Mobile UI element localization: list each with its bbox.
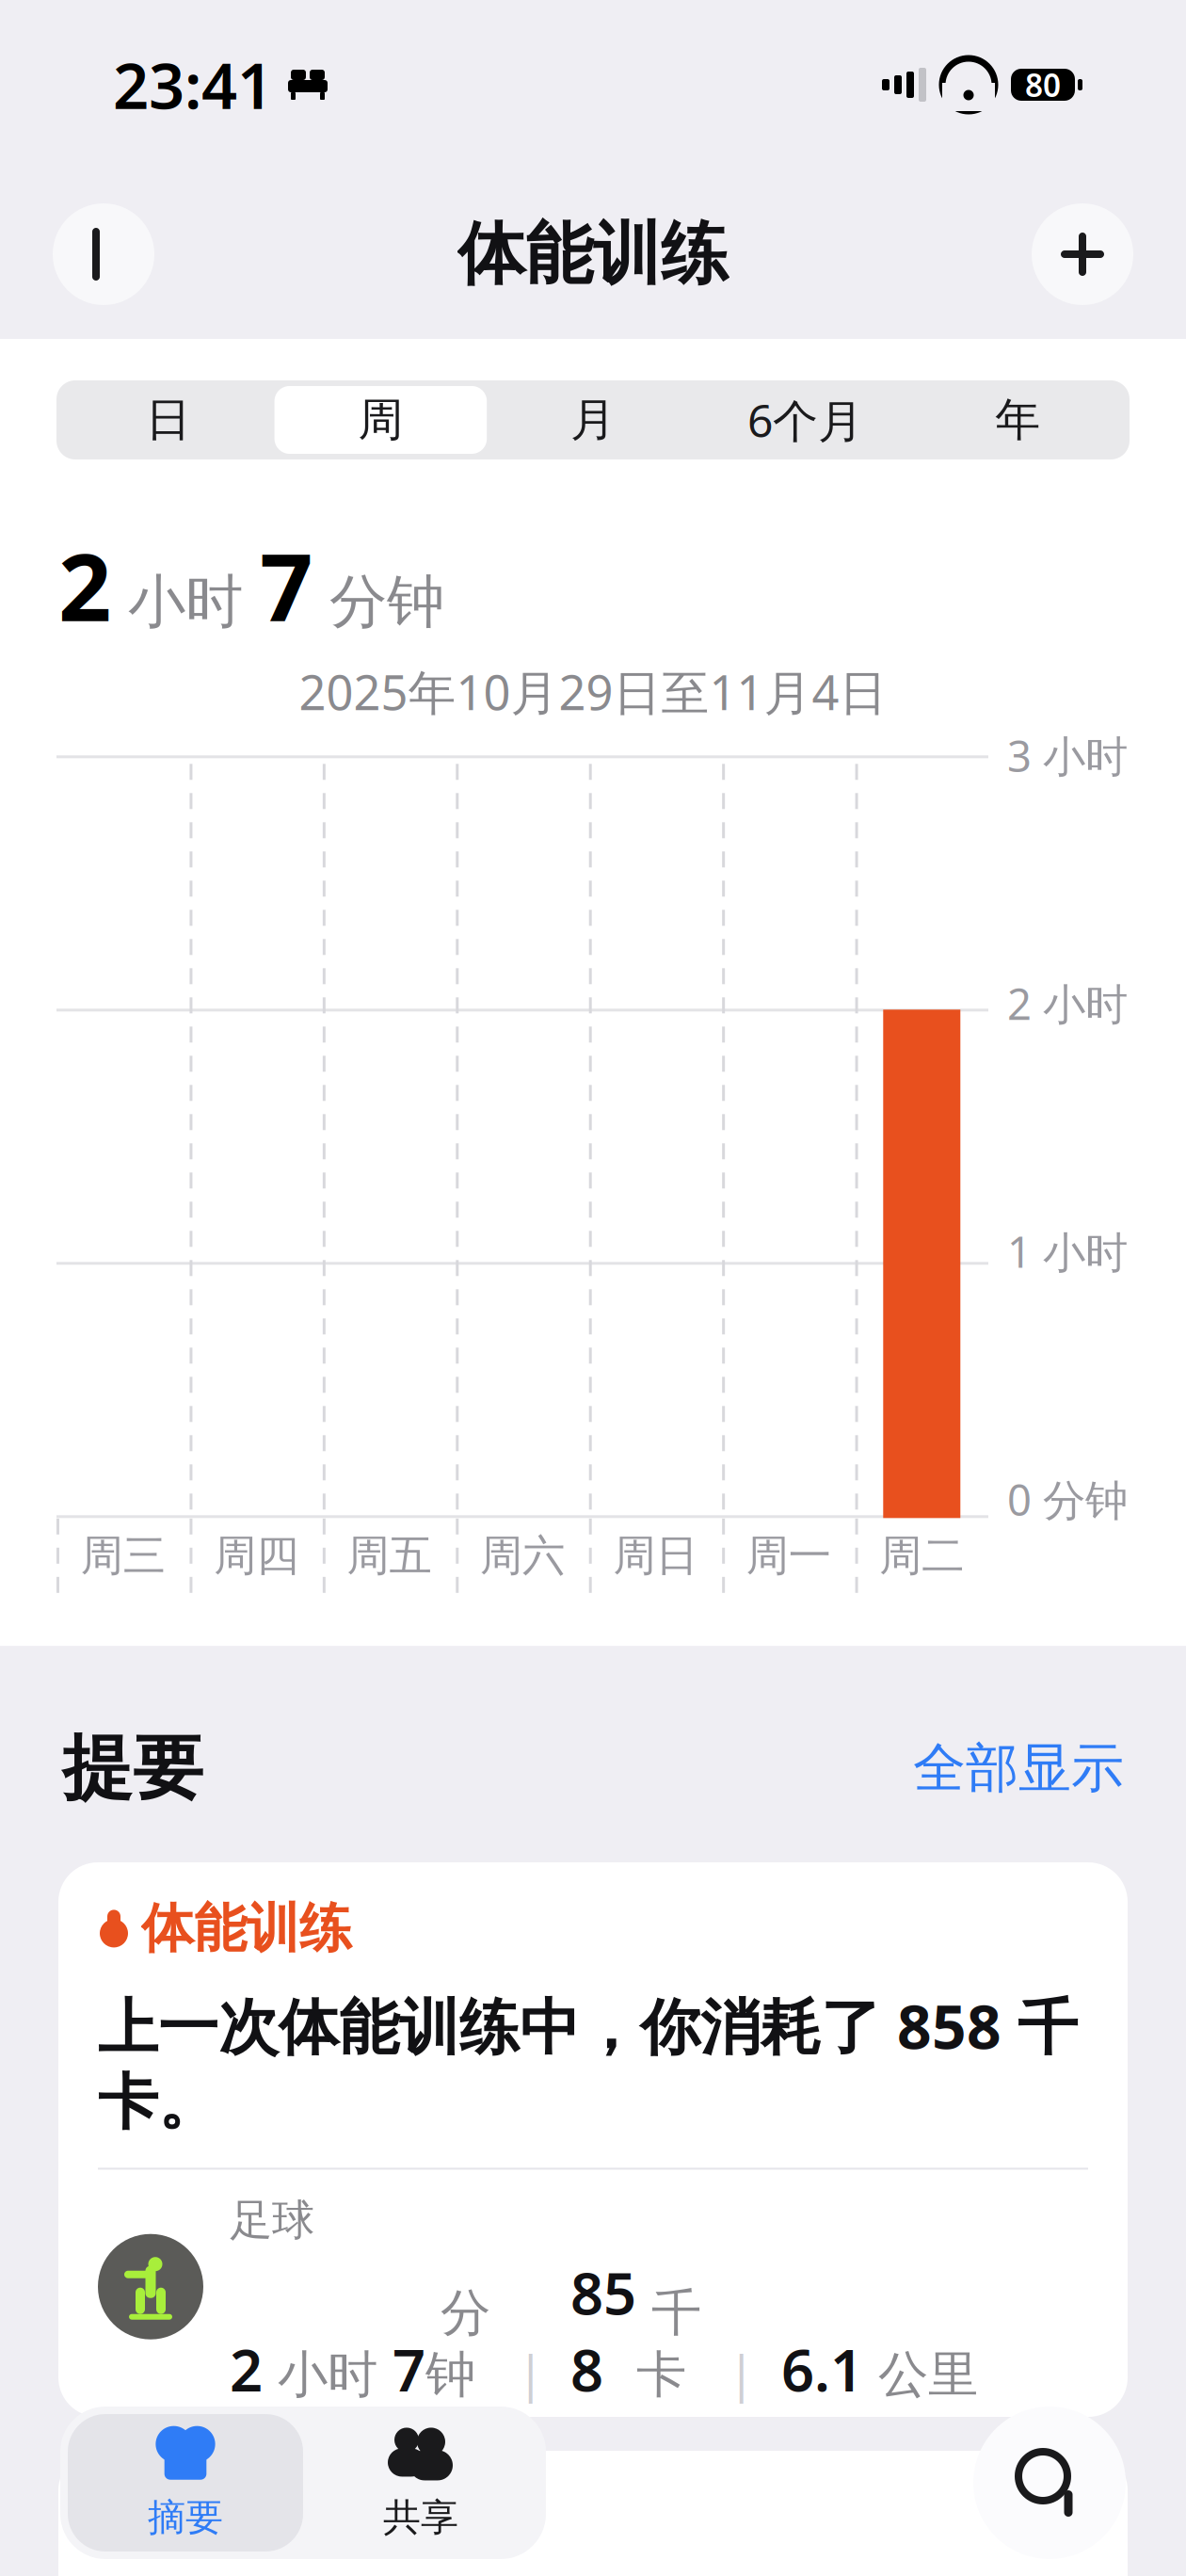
staticText: 3 小时 [1007, 727, 1128, 784]
staticText: | [490, 2339, 570, 2405]
staticText: 分钟 [425, 2282, 490, 2406]
staticText: 体能训练 [141, 1896, 352, 1961]
staticText: | [701, 2339, 781, 2405]
staticText: 公里 [863, 2344, 978, 2406]
staticText: 0 分钟 [1007, 1471, 1128, 1528]
button[interactable]: 年 [912, 386, 1124, 454]
staticText: 2 [58, 523, 111, 647]
button[interactable]: 摘要 [68, 2414, 303, 2552]
staticText: 体能训练 [457, 213, 729, 296]
staticText: 2025年10月29日至11月4日 [299, 660, 887, 723]
staticText: 分钟 [313, 567, 444, 637]
staticText: 2 [230, 2331, 263, 2407]
staticText: 6.1 [781, 2331, 863, 2407]
staticText: 周一 [746, 1529, 831, 1582]
staticText: 足球 [230, 2194, 314, 2247]
staticText: 周 [358, 392, 403, 448]
staticText: 周五 [347, 1529, 432, 1582]
staticText: 1 小时 [1007, 1223, 1128, 1280]
button[interactable]: 添加数据 [1032, 203, 1133, 305]
button[interactable]: 搜索 [973, 2407, 1126, 2559]
staticText: 共享 [383, 2494, 458, 2541]
staticText: 23:41 [113, 43, 273, 126]
button[interactable]: 心率：体能训练 [58, 2451, 1128, 2576]
button[interactable]: 6个月 [699, 386, 912, 454]
button[interactable]: 日 [62, 386, 274, 454]
staticText: 周四 [214, 1529, 298, 1582]
staticText: 小时 [111, 567, 260, 637]
staticText: 日 [146, 392, 191, 448]
staticText: 7 [393, 2331, 425, 2407]
staticText: 摘要 [148, 2494, 223, 2541]
button[interactable]: 周 [274, 386, 487, 454]
button[interactable]: 全部显示 [913, 1736, 1124, 1801]
staticText: 月 [570, 392, 616, 448]
button[interactable]: 返回 [53, 203, 154, 305]
staticText: 全部显示 [913, 1736, 1124, 1801]
staticText: 7 [260, 523, 313, 647]
staticText: 周三 [81, 1529, 165, 1582]
staticText: 6个月 [747, 390, 863, 450]
staticText: 上一次体能训练中，你消耗了 858 千卡。 [98, 1985, 1078, 2140]
staticText: 2 小时 [1007, 975, 1128, 1032]
staticText: 年 [995, 392, 1040, 448]
button[interactable]: 月 [487, 386, 699, 454]
staticText: 心率：体能训练 [147, 2485, 516, 2549]
staticText: 80 [1025, 64, 1061, 106]
staticText: 提要 [62, 1725, 203, 1811]
staticText: 千卡 [636, 2282, 701, 2406]
staticText: 周日 [613, 1529, 698, 1582]
staticText: 周六 [480, 1529, 565, 1582]
button[interactable]: 体能训练 [58, 1862, 1128, 2417]
staticText: 858 [570, 2254, 636, 2407]
button[interactable]: 共享 [303, 2414, 538, 2552]
staticText: 周二 [879, 1529, 964, 1582]
staticText: 小时 [263, 2344, 393, 2406]
